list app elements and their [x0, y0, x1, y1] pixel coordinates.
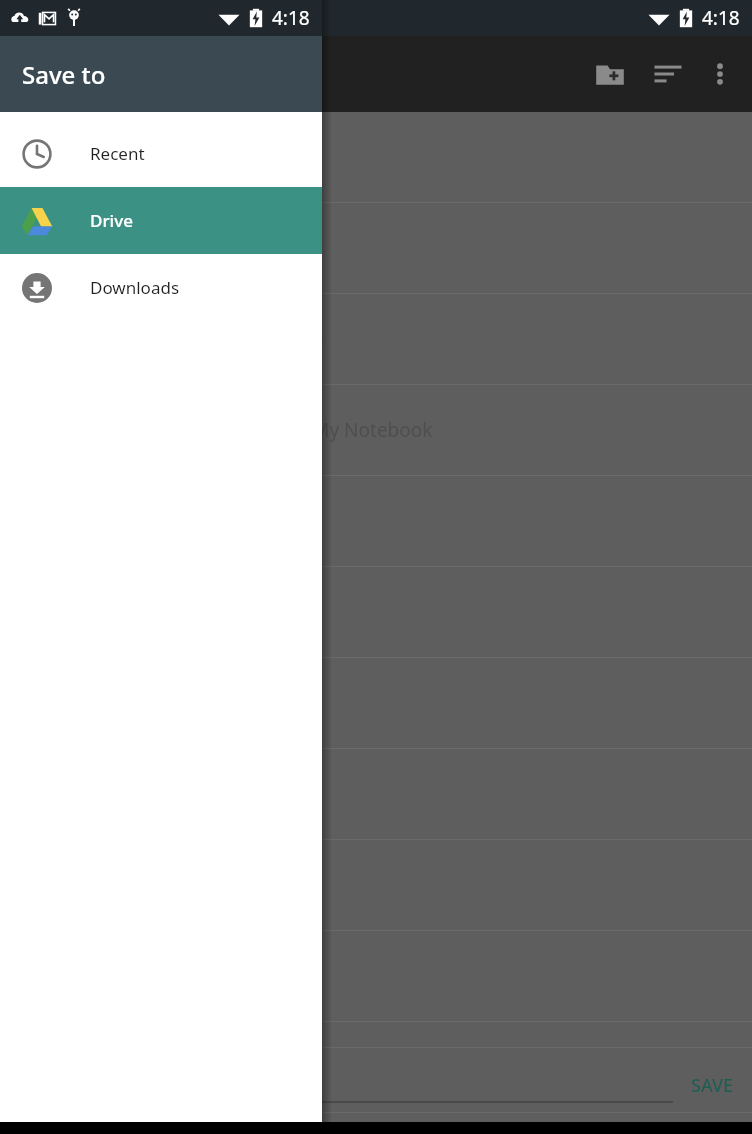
staticText: Recent — [90, 142, 145, 165]
button[interactable]: Recent — [0, 120, 322, 187]
button[interactable]: New folder — [586, 50, 634, 98]
button[interactable]: More options — [698, 52, 742, 96]
button[interactable]: SAVE — [673, 1061, 752, 1110]
button[interactable]: Sort — [644, 50, 692, 98]
staticText: 4:18 — [272, 5, 310, 31]
staticText: Drive — [90, 209, 133, 232]
button[interactable]: Drive — [0, 187, 322, 254]
button[interactable]: Downloads — [0, 254, 322, 321]
staticText: Moleskine Notebook - My Notebook — [112, 417, 433, 443]
staticText: Save to — [22, 58, 106, 91]
staticText: 4:18 — [702, 5, 740, 31]
staticText: Downloads — [90, 276, 180, 299]
staticText: Compressed archive.zip — [112, 326, 324, 352]
staticText: SAVE — [691, 1073, 734, 1098]
